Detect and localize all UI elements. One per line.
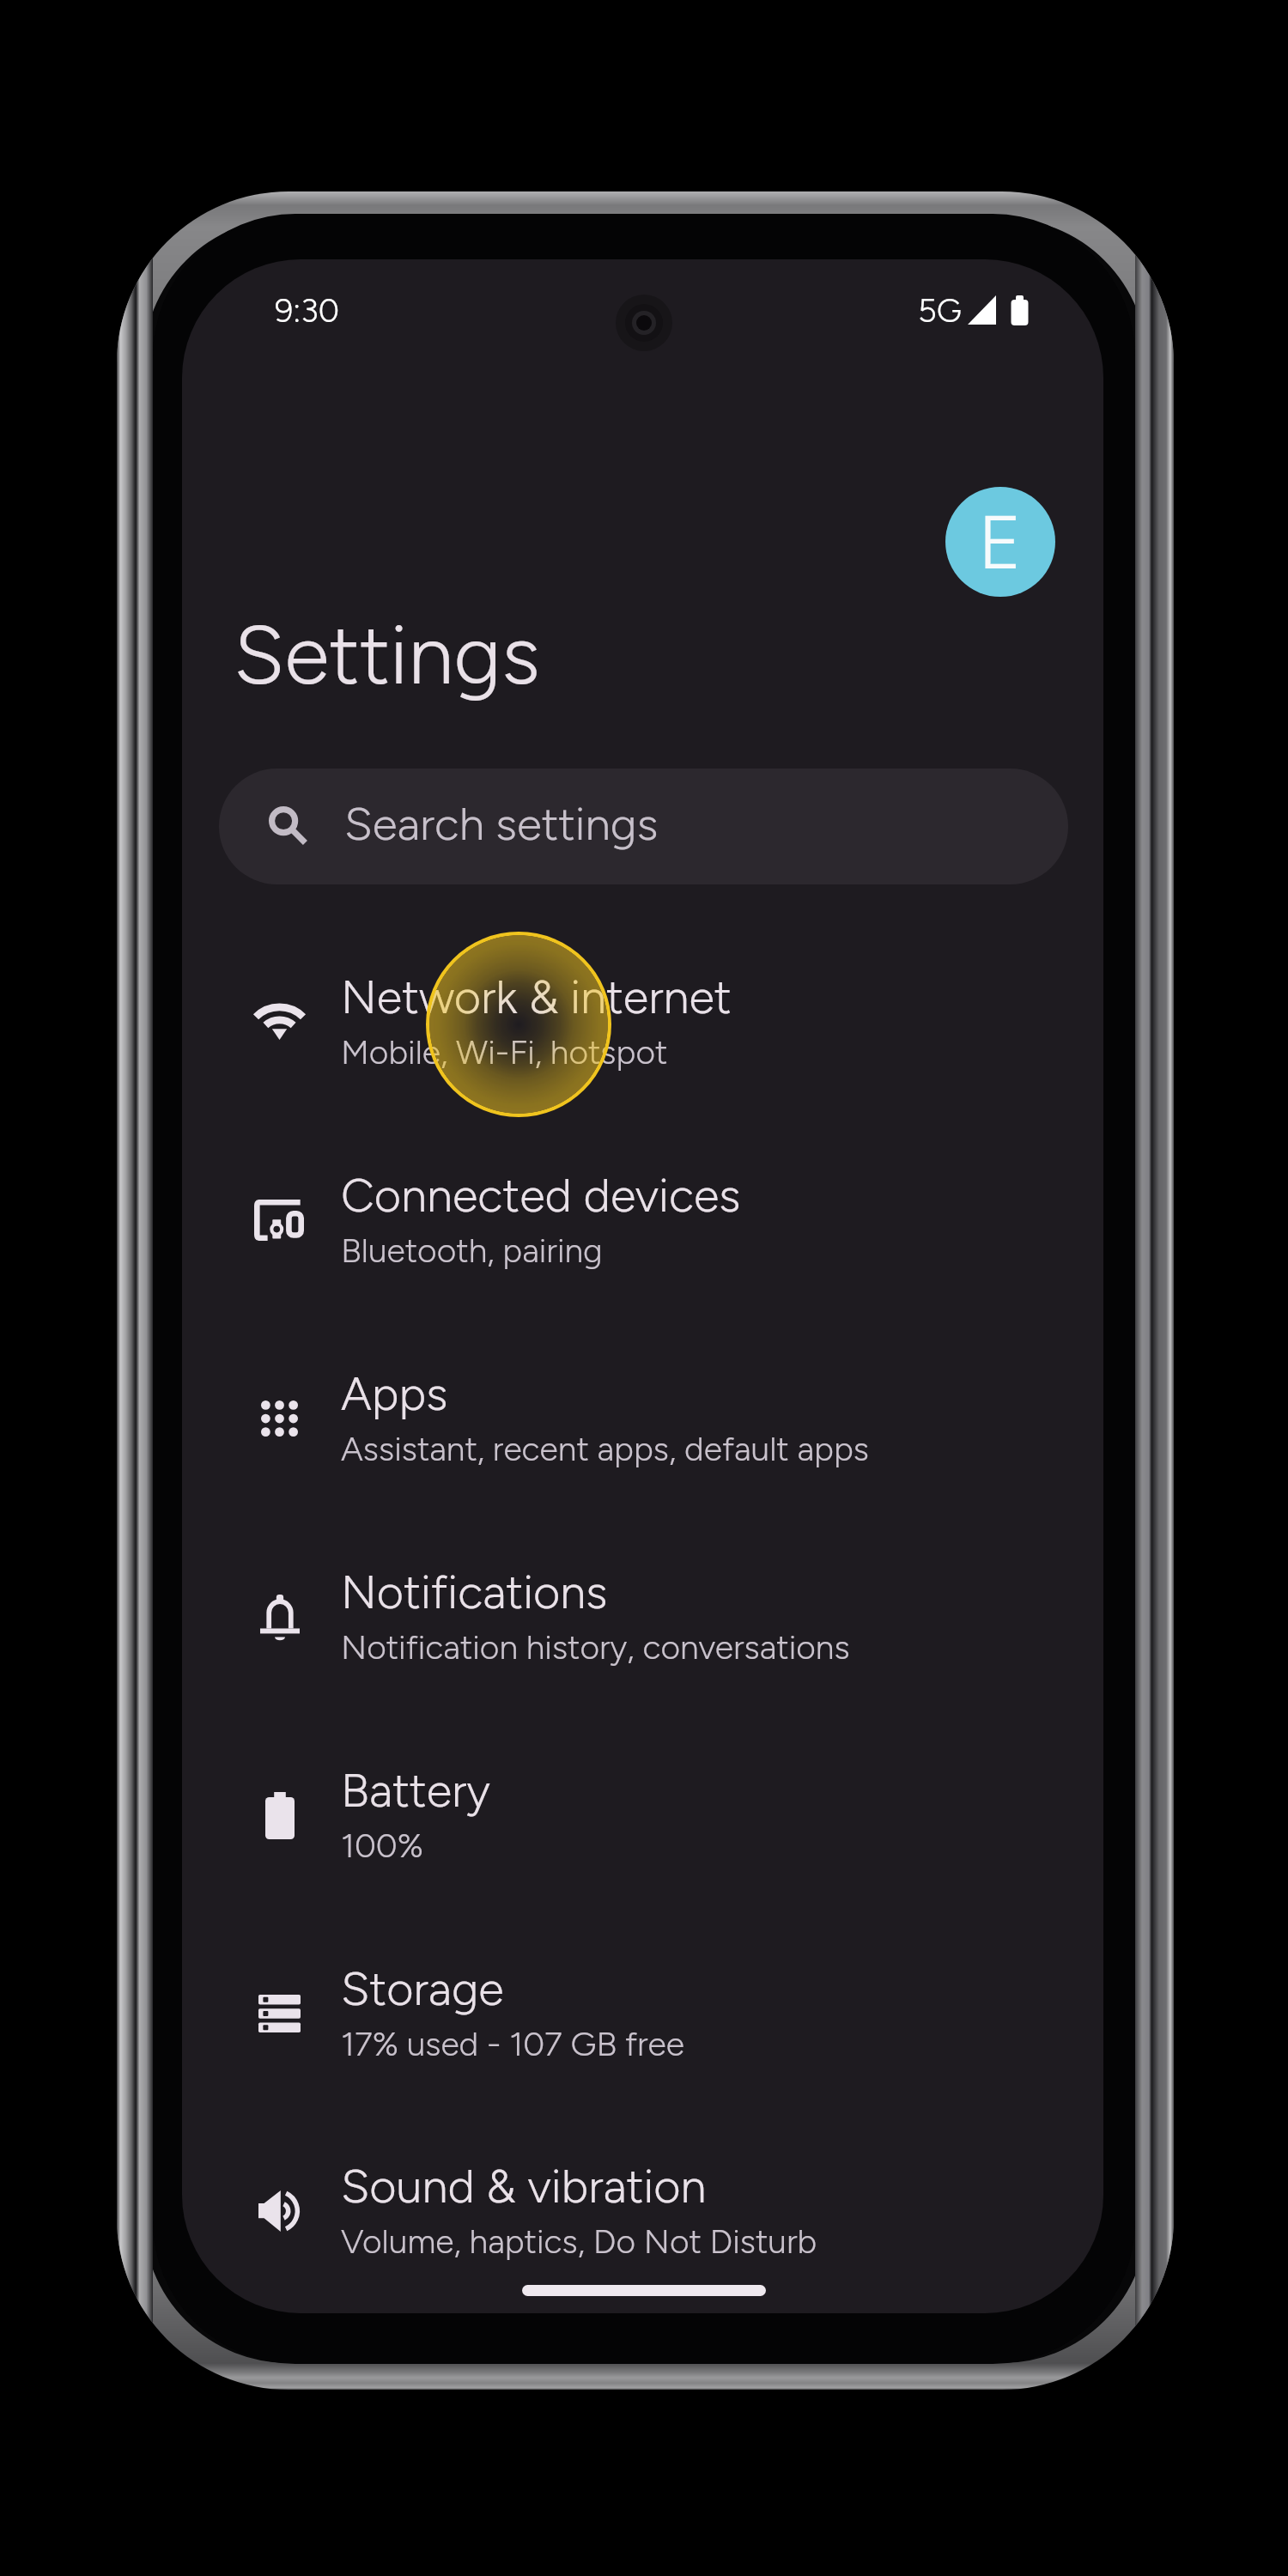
button[interactable]: Apps <box>182 1320 1103 1518</box>
button[interactable]: Notifications <box>182 1518 1103 1716</box>
staticText: 100% <box>341 1826 423 1866</box>
staticText: 9:30 <box>275 291 339 331</box>
button[interactable]: Storage <box>182 1915 1103 2113</box>
staticText: Connected devices <box>341 1168 741 1224</box>
staticText: Notifications <box>341 1564 608 1620</box>
staticText: Sound & vibration <box>341 2159 707 2215</box>
button[interactable]: Sound & vibration <box>182 2112 1103 2311</box>
staticText: Settings <box>234 605 540 704</box>
staticText: E <box>978 497 1023 586</box>
staticText: Volume, haptics, Do Not Disturb <box>341 2221 817 2262</box>
staticText: Search settings <box>344 797 659 852</box>
staticText: Apps <box>341 1366 448 1422</box>
button[interactable]: Account <box>945 487 1055 597</box>
staticText: Storage <box>341 1961 504 2017</box>
button[interactable]: Network & internet <box>182 923 1103 1121</box>
staticText: Battery <box>341 1763 490 1819</box>
button[interactable]: Search settings <box>219 769 1068 884</box>
staticText: Mobile, Wi-Fi, hotspot <box>341 1032 668 1072</box>
staticText: Network & internet <box>341 969 732 1025</box>
staticText: Bluetooth, pairing <box>341 1230 603 1271</box>
staticText: Assistant, recent apps, default apps <box>341 1429 869 1469</box>
staticText: 5G <box>918 291 962 331</box>
staticText: Notification history, conversations <box>341 1627 850 1668</box>
staticText: 17% used - 107 GB free <box>341 2024 684 2064</box>
button[interactable]: Connected devices <box>182 1121 1103 1320</box>
button[interactable]: Battery <box>182 1716 1103 1915</box>
